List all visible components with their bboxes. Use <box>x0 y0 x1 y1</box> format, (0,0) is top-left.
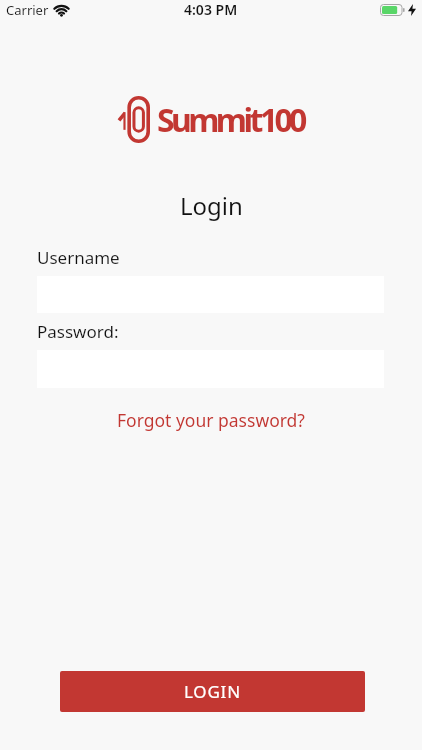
button[interactable]: LOGIN <box>60 671 365 712</box>
staticText: Username <box>37 246 120 269</box>
staticText: 4:03 PM <box>184 0 238 19</box>
staticText: Summit100 <box>157 98 304 142</box>
staticText: Forgot your password? <box>117 408 305 432</box>
staticText: Login <box>180 189 243 222</box>
button[interactable]: Forgot your password? <box>117 408 305 432</box>
staticText: Carrier <box>6 1 49 19</box>
staticText: Password: <box>37 320 119 343</box>
staticText: LOGIN <box>184 680 241 703</box>
